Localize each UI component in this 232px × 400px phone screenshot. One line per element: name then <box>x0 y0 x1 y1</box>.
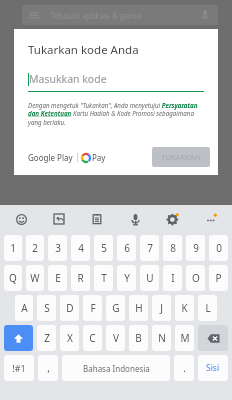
button[interactable]: 3 <box>48 235 67 261</box>
button[interactable]: Backspace <box>198 325 228 351</box>
button[interactable]: 9 <box>186 235 205 261</box>
button[interactable]: 5 <box>94 235 113 261</box>
staticText: P <box>215 271 222 285</box>
button[interactable]: Bahasa Indonesia <box>62 355 170 381</box>
button[interactable]: Settings <box>162 208 184 230</box>
staticText: 4 <box>78 241 84 255</box>
button[interactable]: A <box>15 295 33 321</box>
button[interactable]: 1 <box>4 235 22 261</box>
staticText: X <box>67 331 73 345</box>
staticText: 8 <box>170 241 176 255</box>
staticText: Pay <box>92 152 106 163</box>
button[interactable]: D <box>60 295 79 321</box>
button[interactable]: V <box>106 325 125 351</box>
button[interactable]: 2 <box>26 235 44 261</box>
button[interactable]: P <box>209 265 228 291</box>
button[interactable]: 8 <box>163 235 182 261</box>
button[interactable]: 7 <box>140 235 159 261</box>
staticText: !#1 <box>12 362 26 374</box>
button[interactable]: 6 <box>117 235 136 261</box>
staticText: cowok tampan <box>90 373 135 382</box>
button[interactable]: , <box>38 355 58 381</box>
staticText: R <box>77 271 84 285</box>
staticText: 2 <box>32 241 38 255</box>
button[interactable]: Q <box>4 265 22 291</box>
button[interactable]: !#1 <box>4 355 34 381</box>
staticText: TUKARKAN <box>161 152 201 162</box>
button[interactable]: L <box>198 295 217 321</box>
staticText: . <box>183 361 186 375</box>
button[interactable]: X <box>60 325 79 351</box>
staticText: 9 <box>193 241 199 255</box>
staticText: K <box>181 301 188 315</box>
button[interactable]: W <box>26 265 44 291</box>
staticText: J <box>160 301 163 315</box>
staticText: U <box>146 271 154 285</box>
button[interactable]: C <box>83 325 102 351</box>
button[interactable]: G <box>106 295 125 321</box>
button[interactable]: R <box>71 265 90 291</box>
staticText: M <box>180 331 190 345</box>
staticText: Bahasa Indonesia <box>83 363 150 374</box>
staticText: B <box>135 331 142 345</box>
staticText: Dengan mengetuk "Tukarkan", Anda menyetu… <box>28 101 204 126</box>
staticText: Y <box>124 271 130 285</box>
staticText: Q <box>9 271 17 285</box>
button[interactable]: O <box>186 265 205 291</box>
button[interactable]: K <box>175 295 194 321</box>
button[interactable]: . <box>174 355 194 381</box>
button[interactable]: N <box>152 325 171 351</box>
button[interactable]: Emoji <box>10 208 32 230</box>
staticText: 7 <box>147 241 153 255</box>
staticText: Sisi <box>206 362 220 374</box>
staticText: Telusuri aplikasi & game <box>50 10 142 21</box>
staticText: 3 <box>55 241 61 255</box>
staticText: , <box>47 361 50 375</box>
staticText: O <box>192 271 200 285</box>
button[interactable]: Masukkan kode <box>28 72 204 92</box>
button[interactable]: Sisi <box>198 355 228 381</box>
staticText: 6 <box>124 241 130 255</box>
button[interactable]: Clipboard <box>86 208 108 230</box>
staticText: Tukarkan kode Anda <box>28 42 139 58</box>
staticText: 5 <box>101 241 107 255</box>
button[interactable]: T <box>94 265 113 291</box>
staticText: Masukkan kode <box>29 72 107 86</box>
staticText: 0 <box>216 241 222 255</box>
staticText: H <box>135 301 143 315</box>
staticText: S <box>44 301 50 315</box>
button[interactable]: I <box>163 265 182 291</box>
staticText: E <box>55 271 61 285</box>
button[interactable]: Voice input <box>124 208 146 230</box>
button[interactable]: J <box>152 295 171 321</box>
button[interactable]: M <box>175 325 194 351</box>
button[interactable]: Stickers <box>48 208 70 230</box>
staticText: W <box>30 271 40 285</box>
staticText: C <box>89 331 96 345</box>
staticText: & Bertemu dengan ... <box>14 373 80 382</box>
button[interactable]: E <box>48 265 67 291</box>
staticText: V <box>113 331 119 345</box>
staticText: D <box>66 301 74 315</box>
button[interactable]: U <box>140 265 159 291</box>
button[interactable]: Z <box>37 325 56 351</box>
button[interactable]: Y <box>117 265 136 291</box>
button[interactable]: More options <box>200 208 222 230</box>
button[interactable]: S <box>37 295 56 321</box>
button[interactable]: H <box>129 295 148 321</box>
button[interactable]: B <box>129 325 148 351</box>
staticText: N <box>158 331 166 345</box>
button[interactable]: Shift <box>4 325 33 351</box>
button[interactable]: Telusuri aplikasi & game <box>22 5 218 25</box>
staticText: Google Play <box>28 152 73 163</box>
staticText: A <box>21 301 28 315</box>
button[interactable]: TUKARKAN <box>152 147 210 167</box>
button[interactable]: 0 <box>209 235 228 261</box>
staticText: G <box>112 301 120 315</box>
button[interactable]: 4 <box>71 235 90 261</box>
button[interactable]: F <box>83 295 102 321</box>
staticText: I <box>171 271 175 285</box>
staticText: F <box>90 301 96 315</box>
staticText: 1 <box>10 241 16 255</box>
staticText: T <box>101 271 107 285</box>
